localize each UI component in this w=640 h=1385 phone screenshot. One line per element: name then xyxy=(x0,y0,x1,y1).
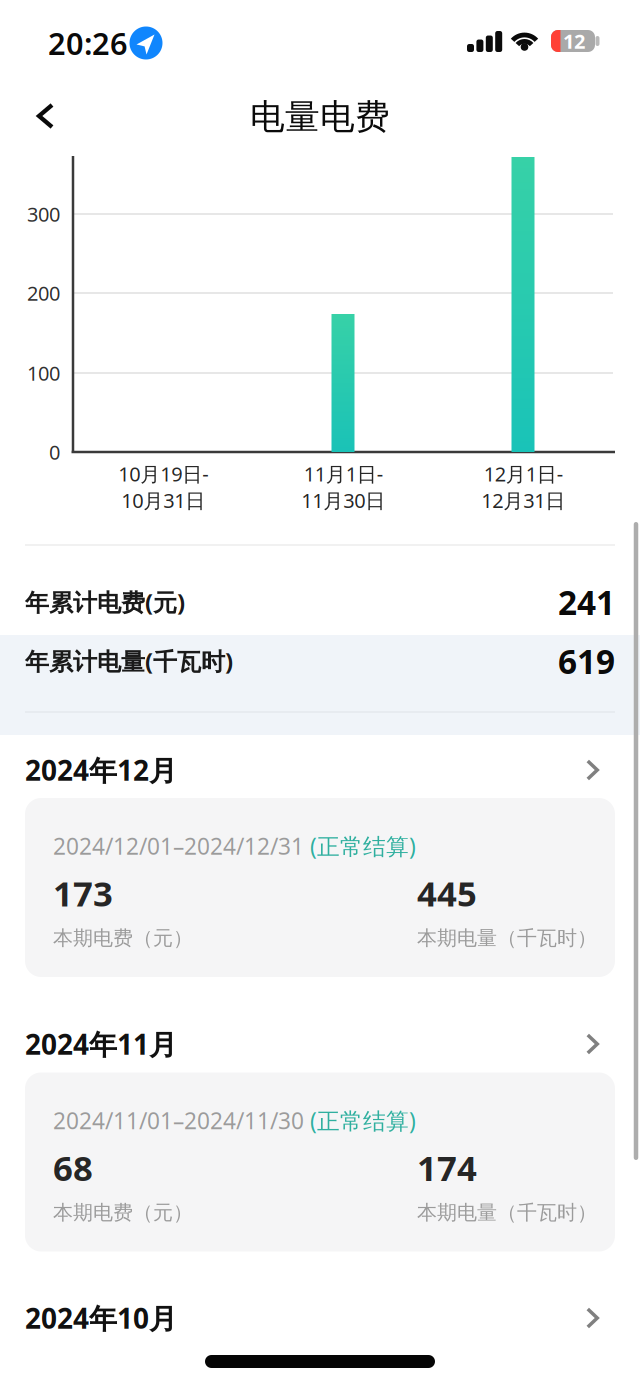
staticText: 年累计电费(元) xyxy=(25,586,185,618)
staticText: 11月1日- 11月30日 xyxy=(301,460,385,513)
staticText: (正常结算) xyxy=(304,831,416,861)
button[interactable]: 2024年10月 xyxy=(25,1290,615,1346)
staticText: 445 xyxy=(417,870,477,916)
staticText: 本期电费（元） xyxy=(53,926,193,950)
staticText: 20:26 xyxy=(48,23,128,63)
button[interactable]: 2024年12月 xyxy=(25,742,615,798)
staticText: (正常结算) xyxy=(304,1105,416,1135)
staticText: 68 xyxy=(53,1144,93,1190)
staticText: 12 xyxy=(563,28,585,54)
staticText: 本期电量（千瓦时） xyxy=(417,1200,597,1225)
staticText: 173 xyxy=(53,870,113,916)
staticText: 2024/12/01–2024/12/31 xyxy=(53,831,304,861)
staticText: 619 xyxy=(558,639,615,683)
button[interactable]: Back xyxy=(16,86,76,146)
staticText: 2024年10月 xyxy=(25,1299,177,1337)
staticText: 200 xyxy=(27,280,60,306)
staticText: 年累计电量(千瓦时) xyxy=(25,645,233,677)
staticText: 电量电费 xyxy=(250,96,390,138)
staticText: 100 xyxy=(27,360,60,386)
staticText: 本期电费（元） xyxy=(53,1200,193,1225)
staticText: 300 xyxy=(27,201,60,227)
staticText: 0 xyxy=(49,439,60,465)
button[interactable]: 2024年11月 xyxy=(25,1016,615,1072)
staticText: 2024年11月 xyxy=(25,1025,177,1063)
staticText: 12月1日- 12月31日 xyxy=(481,460,565,513)
staticText: 10月19日- 10月31日 xyxy=(118,460,208,513)
staticText: 2024/11/01–2024/11/30 xyxy=(53,1105,304,1135)
staticText: 241 xyxy=(558,580,615,624)
staticText: 2024年12月 xyxy=(25,751,177,789)
staticText: 本期电量（千瓦时） xyxy=(417,926,597,950)
staticText: 174 xyxy=(417,1144,477,1190)
